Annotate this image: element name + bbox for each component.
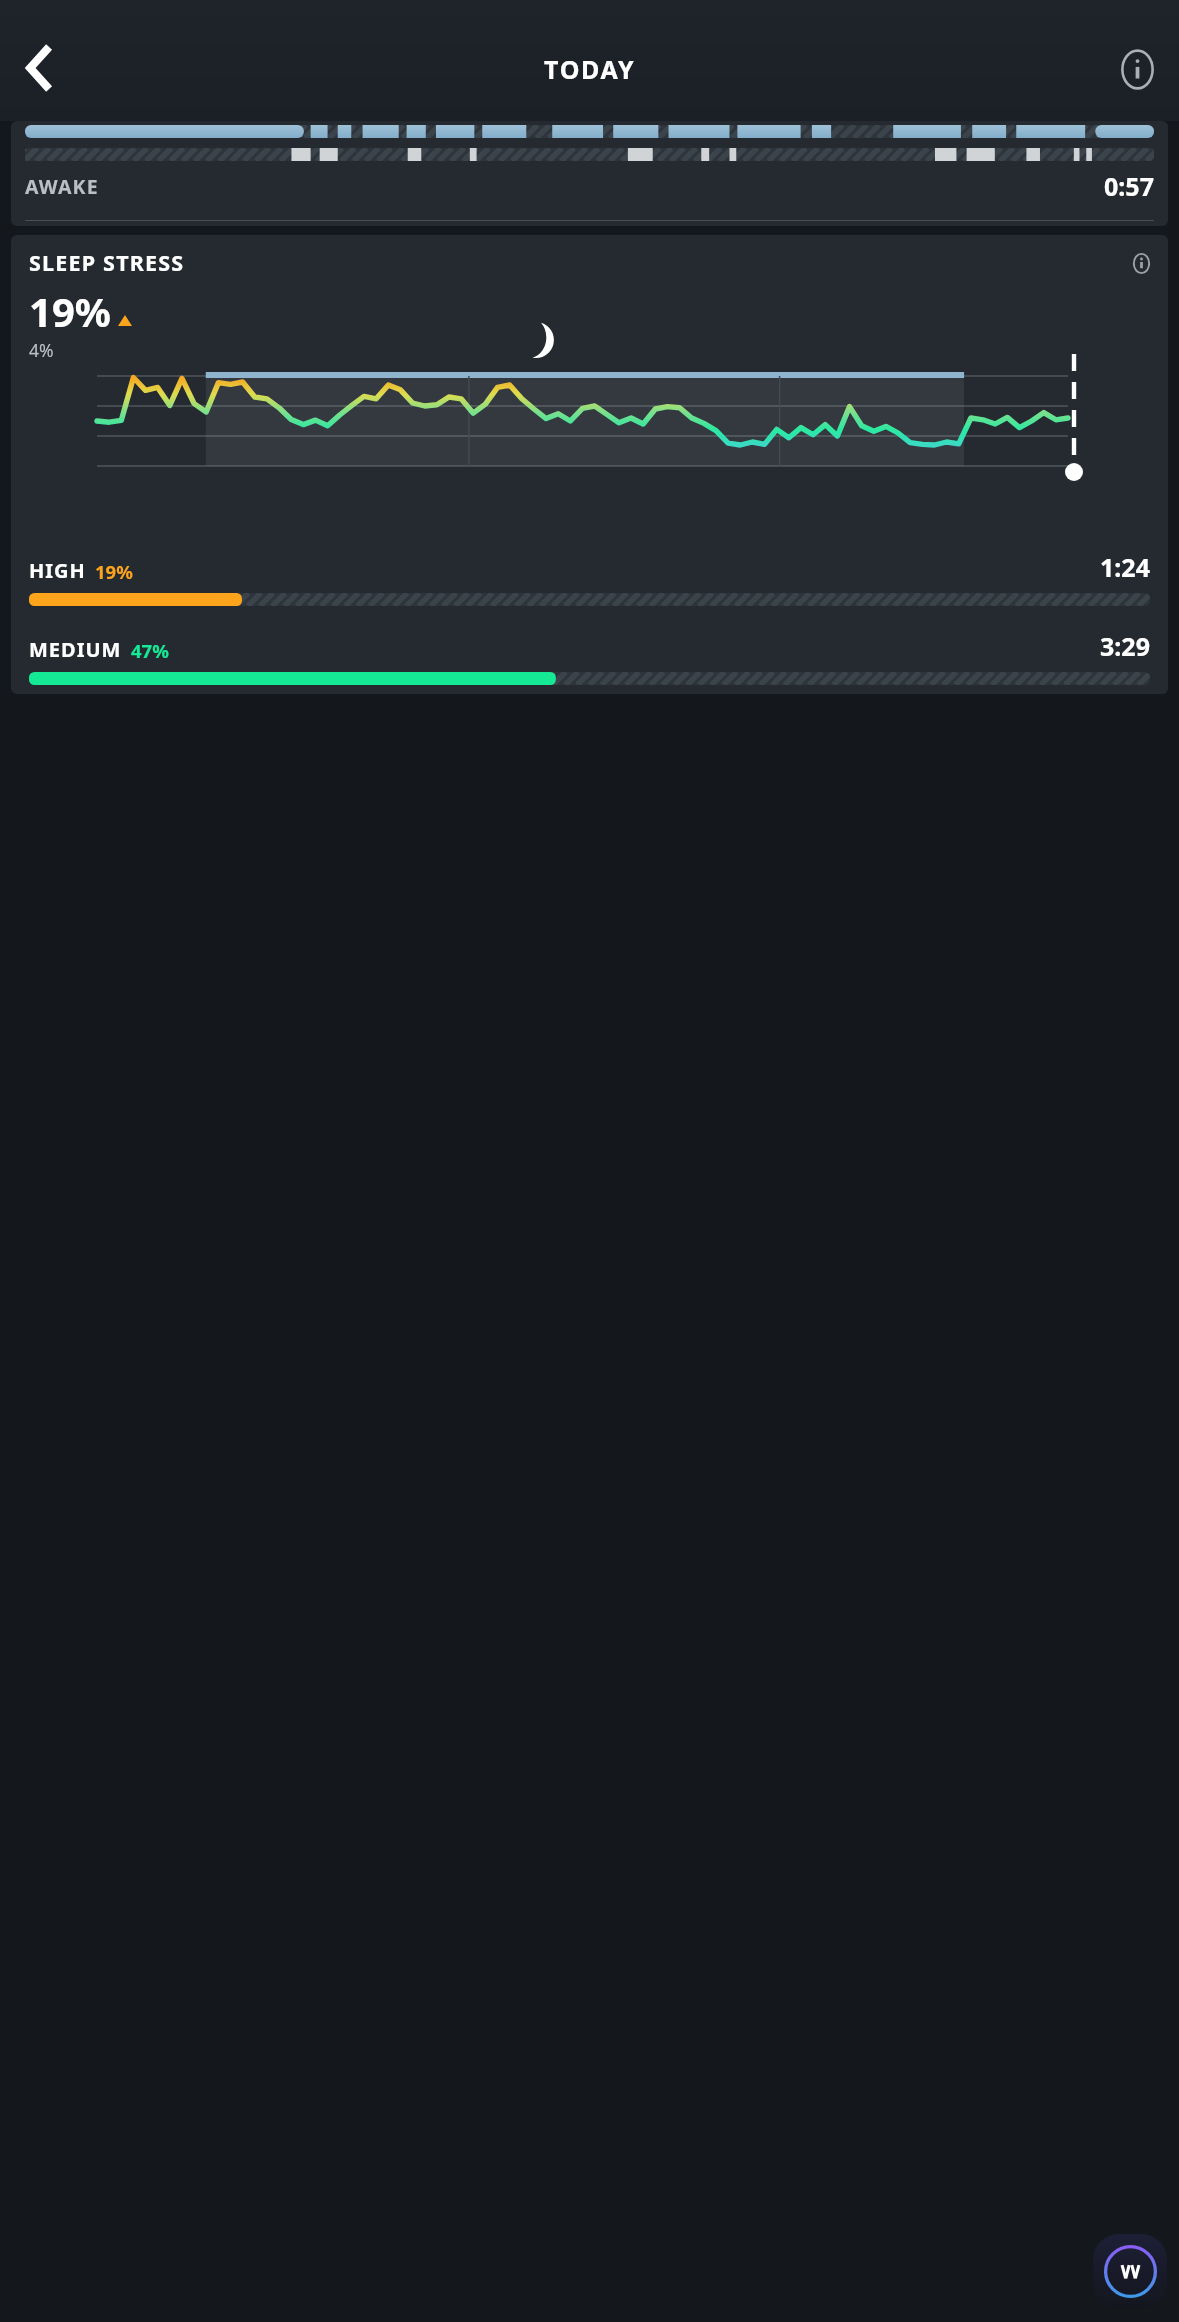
button[interactable]: Info	[1111, 43, 1163, 95]
button[interactable]: AWAKE	[11, 121, 1168, 226]
staticText: 19%	[29, 284, 111, 338]
staticText: 3:29	[1100, 629, 1150, 663]
staticText: 4%	[29, 338, 54, 362]
staticText: 19%	[95, 559, 133, 584]
staticText: TODAY	[544, 52, 636, 86]
staticText: SLEEP STRESS	[29, 248, 185, 277]
button[interactable]: Whoop	[1093, 2234, 1167, 2308]
staticText: HIGH	[29, 557, 86, 584]
staticText: AWAKE	[25, 173, 99, 200]
button[interactable]: Back	[12, 40, 68, 96]
staticText: 47%	[131, 638, 169, 663]
staticText: 0:57	[1104, 169, 1154, 203]
staticText: 1:24	[1100, 550, 1150, 584]
staticText: MEDIUM	[29, 636, 122, 663]
button[interactable]: Sleep stress info	[1128, 250, 1154, 276]
